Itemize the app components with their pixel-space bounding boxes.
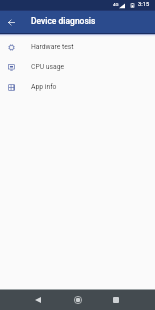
staticText: Hardware test — [31, 43, 74, 51]
button[interactable]: App info — [0, 77, 155, 97]
staticText: App info — [31, 83, 57, 91]
button[interactable]: CPU usage — [0, 57, 155, 77]
staticText: Device diagnosis — [31, 16, 96, 26]
button[interactable]: Back — [27, 289, 48, 310]
staticText: 4G — [113, 2, 119, 7]
button[interactable]: Hardware test — [0, 37, 155, 57]
staticText: CPU usage — [31, 63, 65, 71]
button[interactable]: Recent apps — [105, 289, 126, 310]
button[interactable]: Back — [0, 10, 22, 32]
staticText: 3:15 — [138, 1, 150, 8]
button[interactable]: Home — [67, 289, 88, 310]
